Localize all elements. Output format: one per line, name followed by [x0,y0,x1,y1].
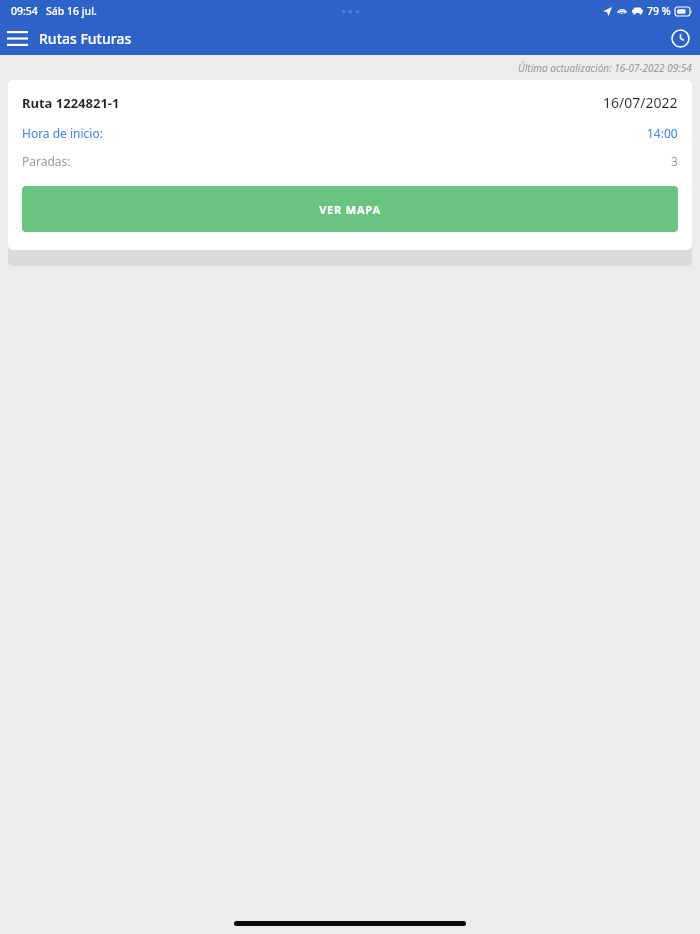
staticText: Ruta 1224821-1 [22,94,120,112]
staticText: Rutas Futuras [39,29,132,48]
staticText: VER MAPA [319,202,381,217]
button[interactable]: Historial [660,22,700,55]
staticText: Sáb 16 jul. [46,4,97,18]
staticText: 16/07/2022 [603,93,678,112]
button[interactable]: Menú [0,22,34,55]
staticText: Paradas: [22,153,71,169]
staticText: 14:00 [647,125,678,141]
staticText: 79 % [647,4,671,18]
staticText: 09:54 [11,4,38,18]
button[interactable]: VER MAPA [22,186,678,232]
button[interactable]: Ruta 1224821-1 [8,80,692,250]
staticText: Última actualización: 16-07-2022 09:54 [518,61,692,75]
staticText: 3 [671,153,678,169]
staticText: Hora de inicio: [22,125,103,141]
